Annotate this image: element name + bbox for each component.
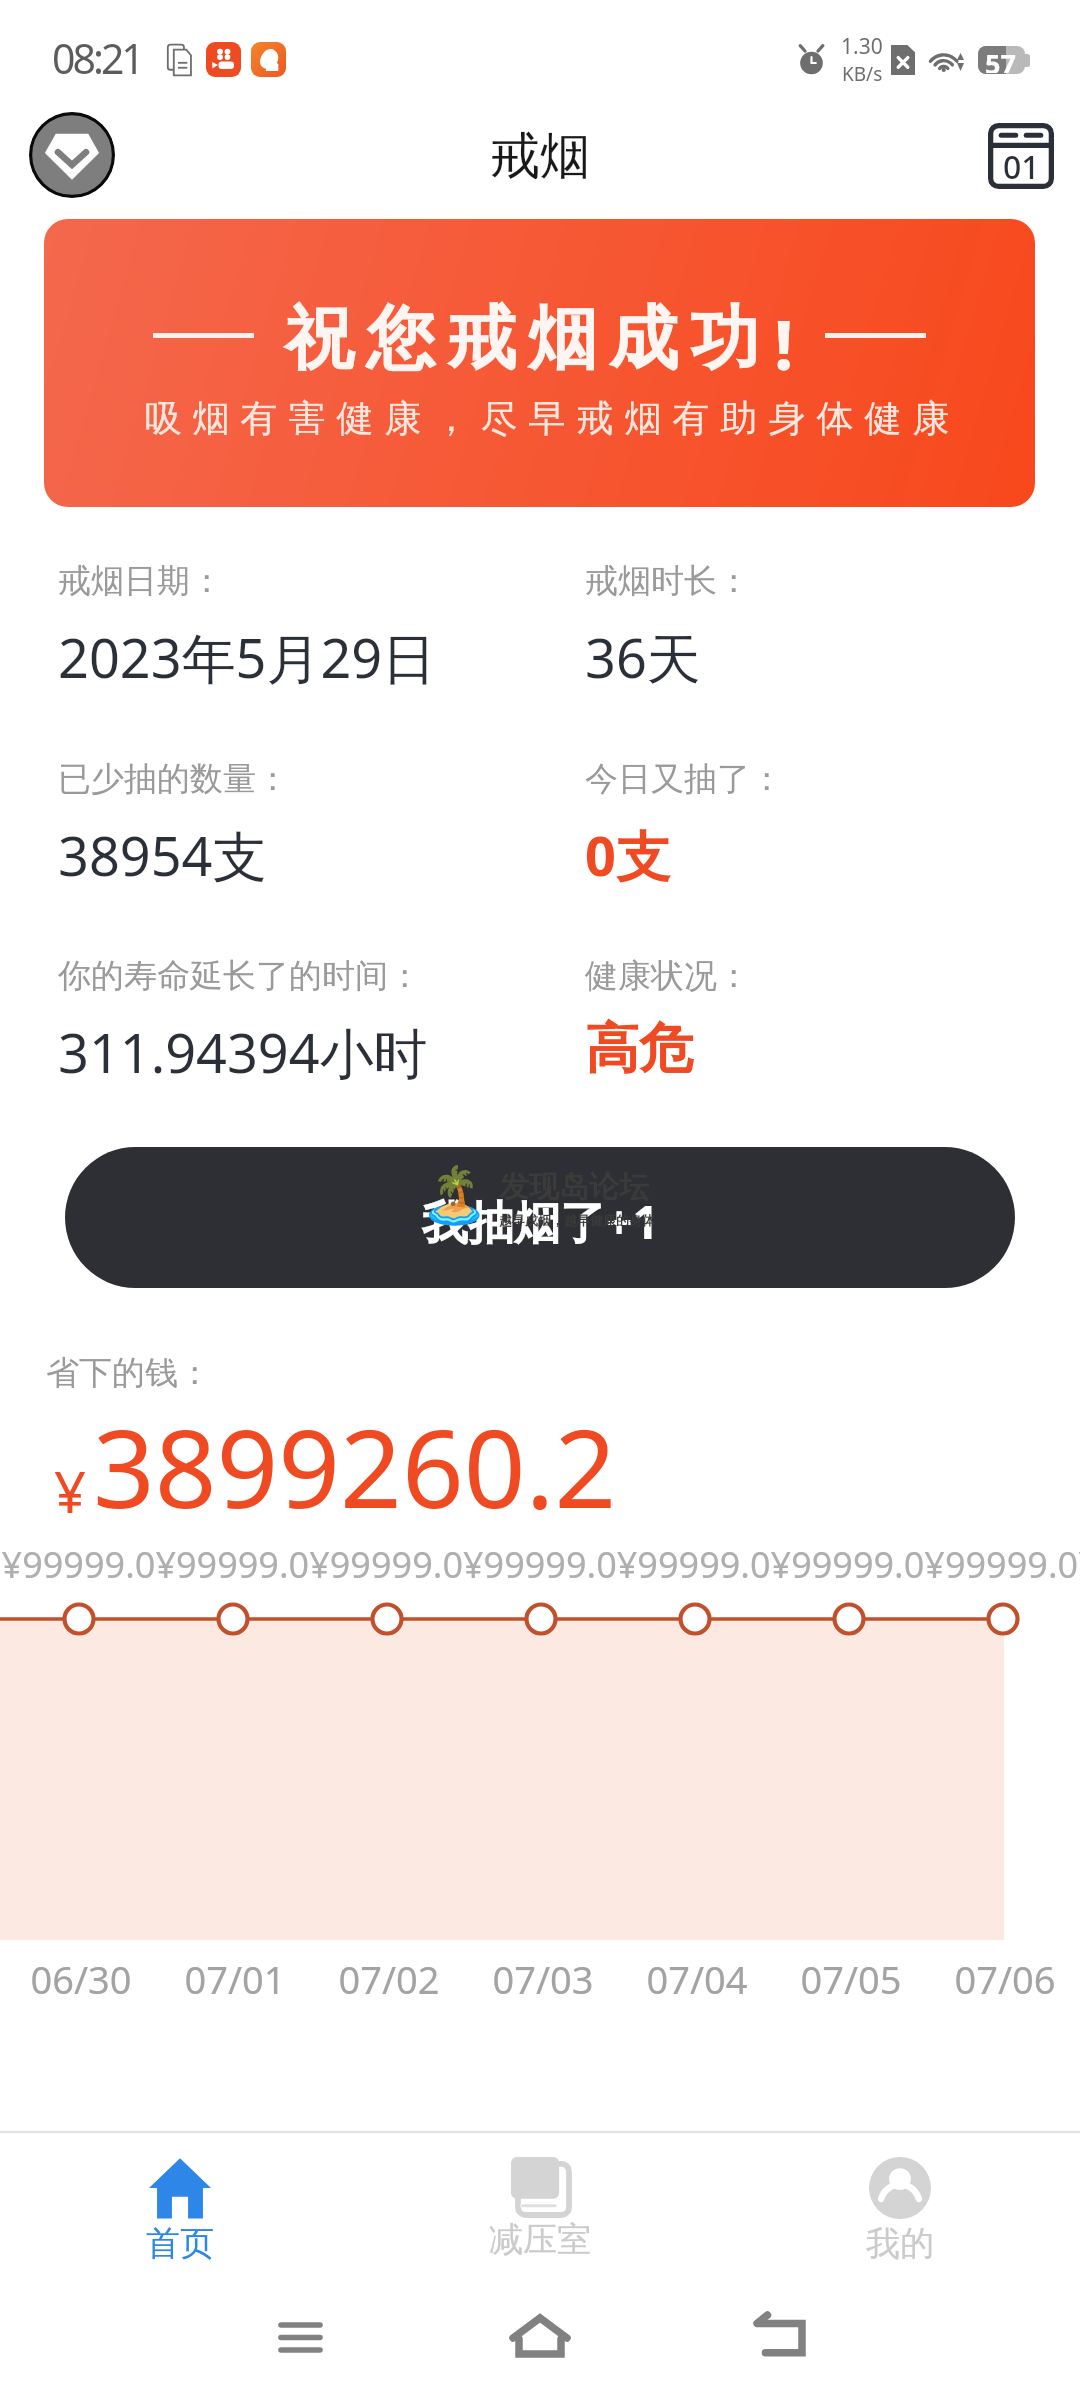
staticText: 首页 [146, 2222, 214, 2265]
staticText: 2023年5月29日 [58, 620, 437, 694]
staticText: 07/05 [800, 1953, 902, 2005]
staticText: ¥ [54, 1453, 87, 1529]
button[interactable]: Calendar [987, 122, 1055, 190]
staticText: 07/06 [954, 1953, 1056, 2005]
staticText: 戒烟日期： [58, 560, 223, 602]
staticText: 发现岛论坛 [499, 1168, 649, 1206]
staticText: 戒烟时长： [585, 560, 750, 602]
button[interactable]: Recent apps [240, 2295, 360, 2385]
staticText: 311.94394小时 [58, 1015, 428, 1089]
staticText: 08:21 [52, 30, 142, 86]
staticText: KB/s [842, 61, 883, 87]
staticText: 省下的钱： [46, 1352, 211, 1394]
staticText: 🏝 [420, 1163, 489, 1227]
staticText: 07/01 [184, 1953, 286, 2005]
staticText: 36天 [585, 620, 701, 694]
button[interactable]: Home [480, 2290, 600, 2380]
staticText: 07/04 [646, 1953, 748, 2005]
button[interactable]: 我的 [720, 2145, 1080, 2291]
staticText: 07/03 [492, 1953, 594, 2005]
staticText: 0¥99999.0¥99999.0¥99999.0¥99999.0¥99999.… [0, 1540, 1061, 1589]
staticText: 1.30 [841, 32, 883, 61]
button[interactable]: 减压室 [360, 2145, 720, 2291]
staticText: 57 [985, 45, 1016, 73]
button[interactable]: Back [720, 2291, 840, 2381]
staticText: 07/02 [338, 1953, 440, 2005]
staticText: 06/30 [30, 1953, 132, 2005]
staticText: 38954支 [58, 818, 267, 892]
staticText: 你的寿命延长了的时间： [58, 955, 421, 997]
staticText: 01 [1003, 145, 1040, 189]
staticText: 3899260.2 [93, 1393, 617, 1540]
staticText: 高危 [585, 1015, 693, 1083]
staticText: 今日又抽了： [585, 758, 783, 800]
staticText: 祝您戒烟成功 [279, 296, 765, 383]
button[interactable]: 我抽烟了+1 [65, 1147, 1015, 1288]
staticText: 0支 [585, 818, 670, 892]
staticText: 戒烟 [490, 125, 590, 188]
staticText: 吸烟有害健康，尽早戒烟有助身体健康 [139, 395, 955, 442]
staticText: 我抽烟了+1 [422, 1190, 659, 1253]
staticText: 减压室 [489, 2218, 591, 2261]
staticText: ! [774, 296, 794, 390]
staticText: 我的 [866, 2222, 934, 2265]
staticText: 健康状况： [585, 955, 750, 997]
staticText: 已少抽的数量： [58, 758, 289, 800]
staticText: 越早戍烟，越早健康的身体 [499, 1212, 655, 1228]
button[interactable]: 首页 [0, 2145, 360, 2291]
button[interactable]: Collapse [29, 112, 115, 198]
